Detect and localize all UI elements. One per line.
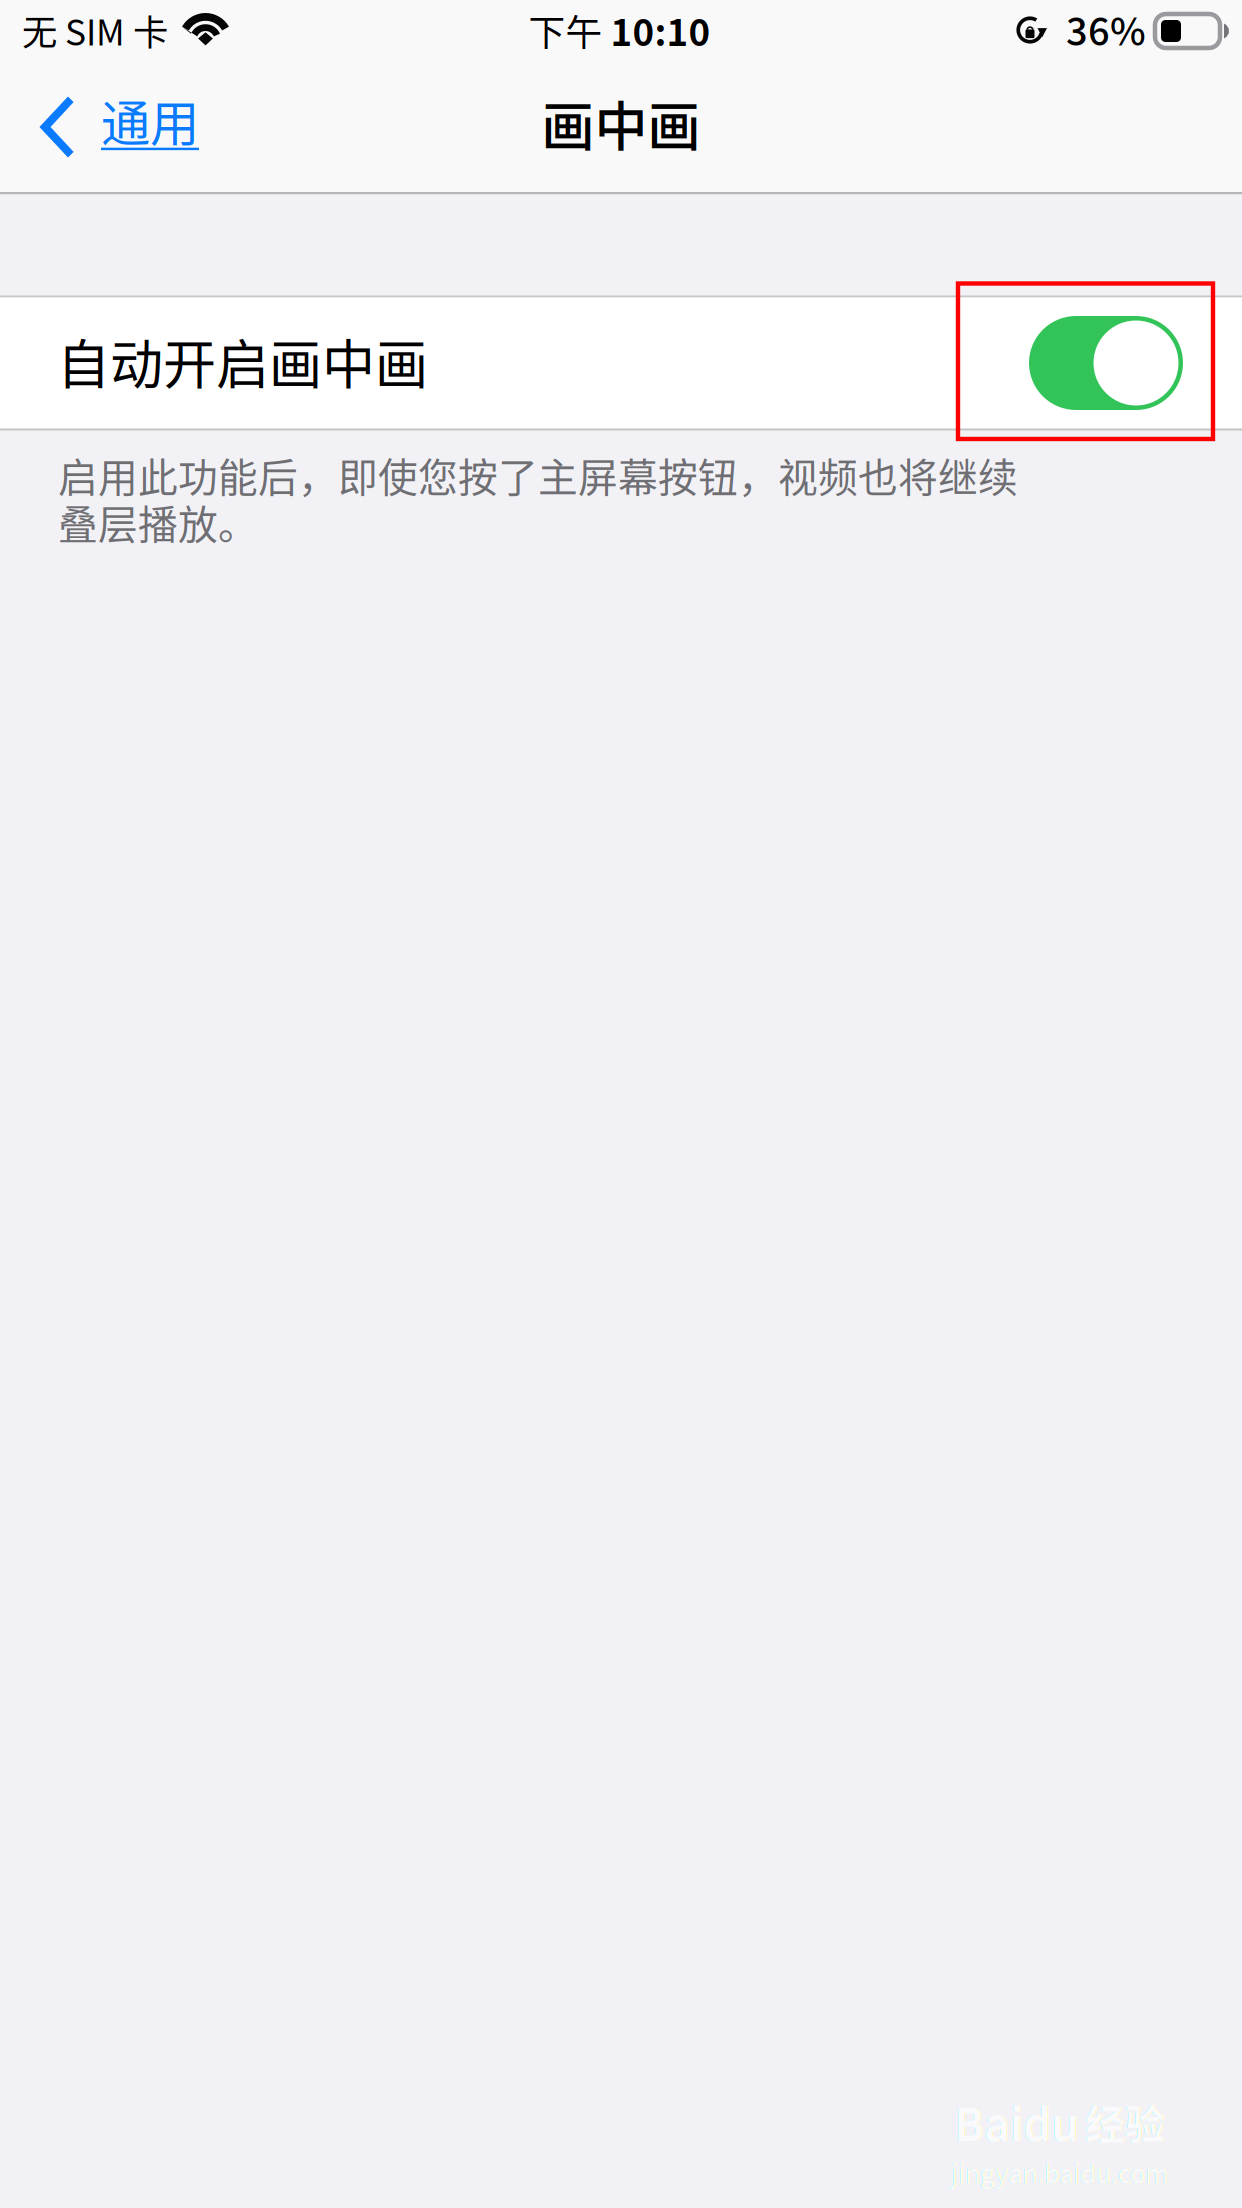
staticText: 启用此功能后，即使您按了主屏幕按钮，视频也将继续 xyxy=(58,446,1018,504)
staticText: 自动开启画中画 xyxy=(57,323,428,399)
staticText: jingyan.baidu.com xyxy=(951,2154,1168,2190)
staticText: 10:10 xyxy=(610,3,710,57)
button[interactable]: 自动开启画中画，已开启 xyxy=(1029,316,1183,410)
staticText: 36% xyxy=(1066,1,1146,56)
staticText: 叠层播放。 xyxy=(58,493,258,551)
staticText: 无 SIM 卡 xyxy=(22,4,168,56)
button[interactable]: 自动开启画中画 xyxy=(0,297,1242,428)
staticText: 画中画 xyxy=(541,85,700,161)
staticText: 通用 xyxy=(101,84,199,156)
button[interactable]: 通用 xyxy=(0,68,229,190)
staticText: 经验 xyxy=(1085,2093,1165,2151)
staticText: 下午 xyxy=(528,3,610,57)
staticText: Baidu xyxy=(954,2090,1079,2154)
